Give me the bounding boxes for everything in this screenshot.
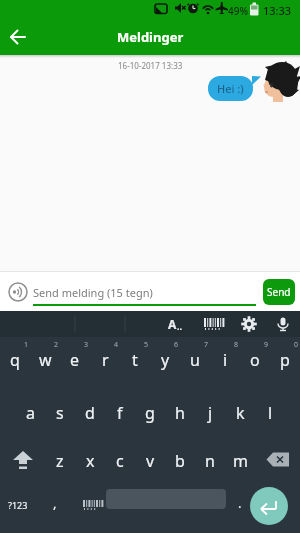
button[interactable]: 0 — [270, 337, 300, 386]
button[interactable]: j — [195, 386, 225, 435]
staticText: l — [268, 402, 273, 424]
button[interactable]: l — [255, 386, 285, 435]
staticText: g — [145, 402, 155, 424]
button[interactable] — [74, 484, 106, 533]
staticText: 9 — [264, 340, 269, 350]
staticText: b — [175, 450, 185, 472]
button[interactable] — [232, 311, 266, 337]
button[interactable]: b — [165, 435, 195, 484]
staticText: , — [53, 494, 57, 512]
staticText: p — [280, 349, 290, 371]
button[interactable] — [106, 484, 226, 533]
staticText: Send melding (15 tegn) — [33, 285, 153, 300]
button[interactable]: 1 — [0, 337, 30, 386]
button[interactable]: x — [75, 435, 105, 484]
staticText: z — [56, 450, 64, 472]
button[interactable] — [194, 311, 232, 337]
staticText: o — [250, 349, 260, 371]
button[interactable]: h — [165, 386, 195, 435]
button[interactable]: d — [75, 386, 105, 435]
button[interactable]: 8 — [210, 337, 240, 386]
staticText: c — [116, 450, 124, 472]
button[interactable]: n — [195, 435, 225, 484]
staticText: m — [233, 450, 248, 472]
staticText: r — [102, 349, 109, 371]
staticText: w — [39, 349, 52, 371]
button[interactable]: s — [45, 386, 75, 435]
staticText: s — [56, 402, 64, 424]
staticText: 2 — [54, 340, 59, 350]
staticText: 5 — [144, 340, 149, 350]
staticText: x — [86, 450, 95, 472]
button[interactable]: Send melding (15 tegn) — [0, 272, 300, 311]
button[interactable]: . — [226, 484, 254, 533]
staticText: 6 — [174, 340, 179, 350]
button[interactable]: 9 — [240, 337, 270, 386]
staticText: 4 — [114, 340, 119, 350]
staticText: d — [85, 402, 95, 424]
button[interactable]: ?123 — [0, 484, 36, 533]
staticText: 7 — [204, 340, 209, 350]
staticText: 1 — [24, 340, 29, 350]
staticText: q — [10, 349, 20, 371]
staticText: k — [236, 402, 245, 424]
button[interactable]: v — [135, 435, 165, 484]
button[interactable]: Send — [263, 279, 295, 305]
staticText: .. — [177, 320, 183, 332]
button[interactable]: Hei :) — [208, 76, 253, 101]
button[interactable]: a — [15, 386, 45, 435]
staticText: n — [205, 450, 215, 472]
staticText: 13:33 — [263, 3, 292, 18]
staticText: . — [238, 494, 242, 512]
button[interactable]: 4 — [90, 337, 120, 386]
staticText: 8 — [234, 340, 239, 350]
button[interactable]: A — [156, 311, 194, 337]
staticText: h — [175, 402, 185, 424]
staticText: u — [190, 349, 200, 371]
button[interactable]: g — [135, 386, 165, 435]
button[interactable] — [255, 435, 300, 484]
staticText: ?123 — [8, 499, 28, 511]
staticText: a — [26, 402, 35, 424]
button[interactable]: k — [225, 386, 255, 435]
staticText: v — [146, 450, 155, 472]
staticText: i — [223, 349, 228, 371]
staticText: y — [161, 349, 170, 371]
button[interactable]: 6 — [150, 337, 180, 386]
button[interactable]: c — [105, 435, 135, 484]
button[interactable]: m — [225, 435, 255, 484]
staticText: 0 — [294, 340, 299, 350]
staticText: Meldinger — [117, 28, 184, 46]
button[interactable] — [0, 435, 45, 484]
staticText: A — [168, 316, 177, 332]
button[interactable]: f — [105, 386, 135, 435]
button[interactable] — [254, 484, 300, 533]
button[interactable] — [6, 25, 30, 49]
button[interactable]: z — [45, 435, 75, 484]
button[interactable]: 7 — [180, 337, 210, 386]
button[interactable] — [266, 311, 300, 337]
staticText: t — [132, 349, 138, 371]
staticText: Hei :) — [217, 81, 244, 96]
staticText: Send — [267, 285, 291, 299]
staticText: 3 — [84, 340, 89, 350]
button[interactable]: 3 — [60, 337, 90, 386]
staticText: f — [117, 402, 123, 424]
button[interactable]: 5 — [120, 337, 150, 386]
button[interactable]: 2 — [30, 337, 60, 386]
staticText: 16-10-2017 13:33 — [118, 60, 183, 71]
staticText: 49% — [228, 4, 248, 18]
staticText: e — [70, 349, 80, 371]
button[interactable]: , — [36, 484, 74, 533]
staticText: j — [208, 402, 213, 424]
